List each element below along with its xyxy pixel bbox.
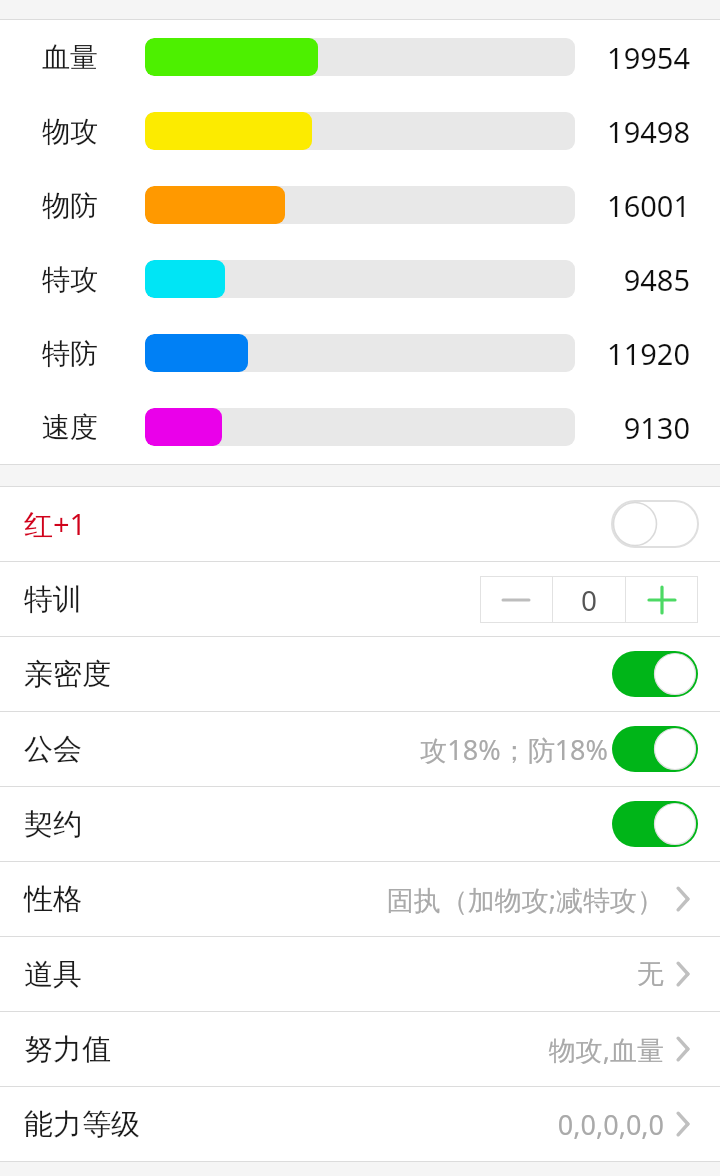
staticText: 9485 (623, 260, 690, 299)
staticText: 攻18%；防18% (420, 731, 608, 768)
staticText: 特防 (42, 336, 98, 371)
button[interactable]: Toggle on (612, 801, 698, 847)
staticText: 0 (581, 581, 598, 619)
staticText: 19954 (607, 38, 690, 77)
staticText: 19498 (607, 112, 690, 151)
button[interactable]: Increase (626, 576, 698, 623)
button[interactable]: 性格 (0, 862, 720, 936)
button[interactable]: 公会 (0, 712, 720, 786)
button[interactable]: Open (668, 1027, 698, 1071)
button[interactable]: 物防 (0, 168, 720, 242)
staticText: 速度 (42, 410, 98, 445)
button[interactable]: Decrease (480, 576, 552, 623)
button[interactable]: 亲密度 (0, 637, 720, 711)
button[interactable]: 血量 (0, 20, 720, 94)
button[interactable]: 红+1 (0, 487, 720, 561)
button[interactable]: 努力值 (0, 1012, 720, 1086)
button[interactable]: 道具 (0, 937, 720, 1011)
staticText: 0,0,0,0,0 (557, 1106, 664, 1143)
button[interactable]: 速度 (0, 390, 720, 464)
staticText: 公会 (24, 731, 82, 768)
button[interactable]: 物攻 (0, 94, 720, 168)
staticText: 物防 (42, 188, 98, 223)
staticText: 16001 (607, 186, 690, 225)
button[interactable]: Toggle on (612, 651, 698, 697)
button[interactable]: Open (668, 952, 698, 996)
staticText: 亲密度 (24, 656, 111, 693)
staticText: 固执（加物攻;减特攻） (386, 881, 664, 918)
staticText: 无 (637, 957, 664, 991)
button[interactable]: 契约 (0, 787, 720, 861)
staticText: 特训 (24, 581, 82, 618)
staticText: 11920 (607, 334, 690, 373)
staticText: 性格 (24, 881, 82, 918)
button[interactable]: Toggle on (612, 726, 698, 772)
button[interactable]: Open (668, 1102, 698, 1146)
staticText: 道具 (24, 956, 82, 993)
staticText: 红+1 (24, 504, 87, 544)
staticText: 努力值 (24, 1031, 111, 1068)
button[interactable]: 能力等级 (0, 1087, 720, 1161)
button[interactable]: Toggle off (612, 501, 698, 547)
staticText: 血量 (42, 40, 98, 75)
staticText: 9130 (623, 408, 690, 447)
button[interactable]: 特训 (0, 562, 720, 636)
button[interactable]: 特防 (0, 316, 720, 390)
staticText: 能力等级 (24, 1106, 140, 1143)
staticText: 物攻,血量 (548, 1031, 664, 1068)
button[interactable]: 特攻 (0, 242, 720, 316)
staticText: 物攻 (42, 114, 98, 149)
button[interactable]: Open (668, 877, 698, 921)
staticText: 契约 (24, 806, 82, 843)
staticText: 特攻 (42, 262, 98, 297)
